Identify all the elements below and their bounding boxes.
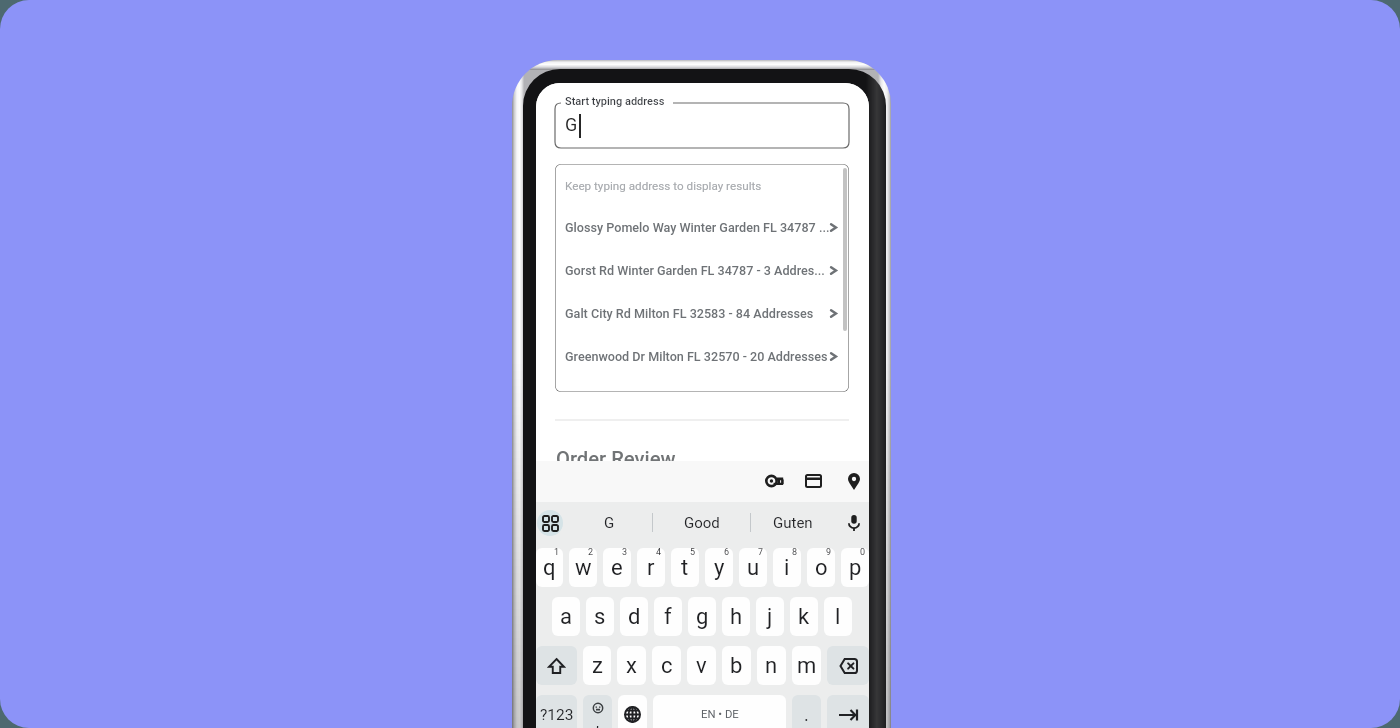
staticText: 5 — [690, 548, 696, 558]
button[interactable]: s — [586, 597, 614, 636]
button[interactable]: Voice input — [839, 508, 869, 538]
button[interactable]: v — [687, 646, 716, 685]
staticText: i — [784, 555, 790, 581]
button[interactable]: i — [773, 548, 801, 587]
button[interactable]: Good — [653, 502, 750, 543]
staticText: Guten — [773, 514, 813, 532]
staticText: d — [628, 604, 641, 630]
button[interactable]: u — [739, 548, 767, 587]
staticText: n — [765, 653, 778, 679]
button[interactable]: h — [722, 597, 750, 636]
button[interactable]: Glossy Pomelo Way Winter Garden FL 34787… — [555, 213, 849, 241]
button[interactable]: Guten — [751, 502, 834, 543]
button[interactable]: G — [566, 502, 652, 543]
button[interactable]: Payment methods — [793, 461, 833, 501]
staticText: f — [664, 604, 672, 630]
button[interactable]: l — [824, 597, 852, 636]
button[interactable]: ?123 — [536, 695, 577, 728]
button[interactable]: y — [705, 548, 733, 587]
button[interactable]: e — [603, 548, 631, 587]
staticText: Order Review — [556, 447, 676, 471]
button[interactable]: f — [654, 597, 682, 636]
staticText: 1 — [554, 548, 560, 558]
staticText: r — [647, 555, 655, 581]
button[interactable]: g — [688, 597, 716, 636]
button[interactable]: o — [807, 548, 835, 587]
staticText: Keep typing address to display results — [565, 179, 762, 193]
button[interactable]: Addresses — [834, 461, 869, 501]
button[interactable]: b — [722, 646, 751, 685]
button[interactable]: x — [617, 646, 646, 685]
button[interactable]: Greenwood Dr Milton FL 32570 - 20 Addres… — [555, 342, 849, 370]
staticText: j — [767, 604, 773, 630]
button[interactable]: w — [569, 548, 597, 587]
staticText: x — [626, 653, 637, 679]
staticText: , — [596, 714, 599, 728]
button[interactable]: q — [536, 548, 563, 587]
staticText: g — [696, 604, 709, 630]
button[interactable]: EN • DE — [653, 695, 786, 728]
staticText: a — [560, 604, 572, 630]
button[interactable]: k — [790, 597, 818, 636]
staticText: 8 — [792, 548, 798, 558]
staticText: Glossy Pomelo Way Winter Garden FL 34787… — [565, 220, 830, 235]
button[interactable]: r — [637, 548, 665, 587]
staticText: h — [730, 604, 743, 630]
staticText: EN • DE — [701, 708, 739, 721]
staticText: 3 — [622, 548, 628, 558]
staticText: Start typing address — [565, 95, 665, 108]
button[interactable]: p — [841, 548, 869, 587]
button[interactable]: , — [583, 695, 612, 728]
staticText: k — [798, 604, 810, 630]
staticText: 4 — [656, 548, 662, 558]
staticText: q — [543, 555, 556, 581]
staticText: u — [747, 555, 760, 581]
staticText: b — [730, 653, 743, 679]
staticText: m — [797, 653, 817, 679]
button[interactable]: c — [652, 646, 681, 685]
staticText: Gorst Rd Winter Garden FL 34787 - 3 Addr… — [565, 263, 825, 278]
staticText: y — [714, 555, 725, 581]
staticText: 0 — [860, 548, 866, 558]
staticText: 6 — [724, 548, 730, 558]
staticText: G — [604, 514, 615, 532]
button[interactable]: Passwords — [754, 461, 794, 501]
staticText: z — [592, 653, 603, 679]
staticText: l — [835, 604, 841, 630]
staticText: Greenwood Dr Milton FL 32570 - 20 Addres… — [565, 349, 828, 364]
staticText: e — [611, 555, 623, 581]
button[interactable]: . — [792, 695, 821, 728]
staticText: Galt City Rd Milton FL 32583 - 84 Addres… — [565, 306, 814, 321]
button[interactable]: m — [792, 646, 821, 685]
staticText: G — [565, 114, 578, 135]
staticText: 2 — [588, 548, 594, 558]
staticText: c — [661, 653, 673, 679]
staticText: . — [804, 704, 809, 725]
button[interactable]: Gorst Rd Winter Garden FL 34787 - 3 Addr… — [555, 256, 849, 284]
staticText: w — [575, 555, 592, 581]
button[interactable]: d — [620, 597, 648, 636]
button[interactable]: n — [757, 646, 786, 685]
button[interactable]: j — [756, 597, 784, 636]
button[interactable] — [618, 695, 647, 728]
button[interactable]: Galt City Rd Milton FL 32583 - 84 Addres… — [555, 299, 849, 327]
staticText: 9 — [826, 548, 832, 558]
staticText: p — [849, 555, 862, 581]
button[interactable] — [827, 646, 869, 685]
button[interactable]: a — [552, 597, 580, 636]
staticText: s — [594, 604, 606, 630]
staticText: v — [696, 653, 707, 679]
button[interactable]: t — [671, 548, 699, 587]
staticText: o — [815, 555, 828, 581]
staticText: t — [681, 555, 689, 581]
button[interactable] — [827, 695, 869, 728]
button[interactable]: Keyboard tools — [537, 510, 563, 536]
button[interactable]: z — [583, 646, 611, 685]
staticText: Good — [684, 514, 720, 532]
button[interactable] — [536, 646, 577, 685]
staticText: ?123 — [540, 706, 574, 724]
staticText: 7 — [758, 548, 764, 558]
